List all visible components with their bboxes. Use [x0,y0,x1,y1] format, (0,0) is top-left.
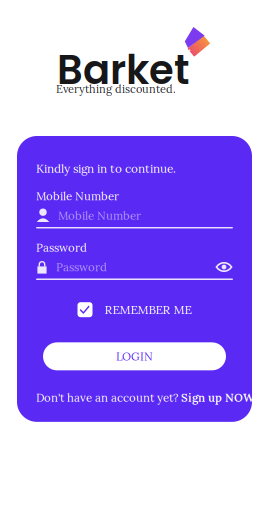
button[interactable]: Show password [215,260,233,274]
button[interactable]: REMEMBER ME [77,302,191,317]
staticText: Sign up NOW [181,390,254,405]
staticText: LOGIN [116,349,153,364]
staticText: REMEMBER ME [104,302,191,317]
button[interactable]: Sign up NOW [181,390,254,405]
staticText: Password [56,260,107,274]
staticText: Mobile Number [36,189,119,203]
staticText: Barket [57,42,190,98]
staticText: Mobile Number [58,208,141,223]
staticText: Don't have an account yet? [36,390,181,405]
button[interactable]: LOGIN [43,342,226,370]
staticText: Kindly sign in to continue. [36,161,176,176]
staticText: Everything discounted. [56,82,176,96]
staticText: Password [36,240,87,255]
